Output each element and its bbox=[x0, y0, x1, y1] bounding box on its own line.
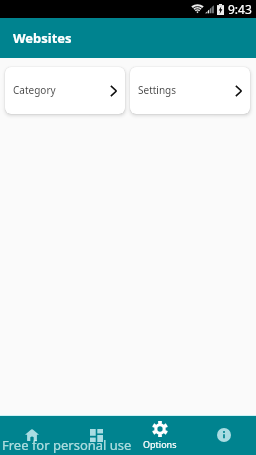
staticText: Category bbox=[13, 83, 56, 97]
button[interactable]: Dashboard bbox=[64, 415, 128, 455]
staticText: 9:43 bbox=[228, 1, 252, 17]
button[interactable]: Options bbox=[128, 415, 192, 455]
button[interactable]: Home bbox=[0, 415, 64, 455]
staticText: Options bbox=[143, 438, 177, 450]
button[interactable]: Info bbox=[192, 415, 256, 455]
staticText: Settings bbox=[138, 83, 177, 97]
button[interactable]: Settings bbox=[130, 67, 250, 114]
button[interactable]: Category bbox=[5, 67, 125, 114]
staticText: Websites bbox=[13, 29, 72, 47]
staticText: Free for personal use bbox=[2, 436, 132, 454]
